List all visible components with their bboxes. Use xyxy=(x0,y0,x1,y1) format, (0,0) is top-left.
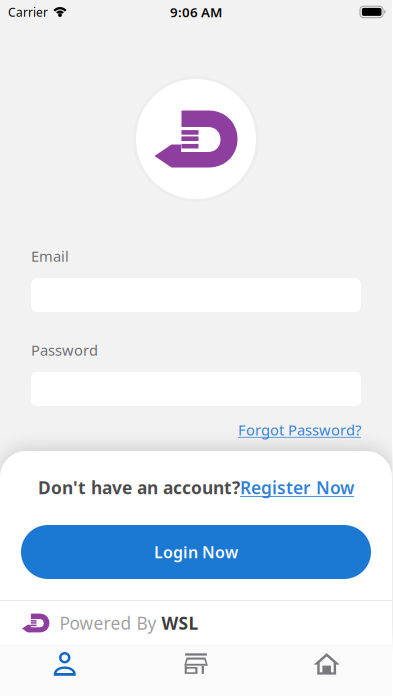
button[interactable]: Login Now xyxy=(21,525,371,579)
staticText: Email xyxy=(31,246,69,266)
button[interactable]: Home xyxy=(261,644,392,696)
staticText: 9:06 AM xyxy=(170,3,222,21)
staticText: Carrier xyxy=(8,4,48,20)
staticText: Powered By xyxy=(59,611,161,634)
staticText: WSL xyxy=(161,611,198,634)
staticText: Login Now xyxy=(154,541,238,563)
staticText: Register Now xyxy=(240,476,354,499)
staticText: Forgot Password? xyxy=(238,420,361,439)
button[interactable]: Forgot Password? xyxy=(31,420,361,439)
button[interactable]: Register Now xyxy=(240,476,354,499)
button[interactable]: Store xyxy=(131,644,261,696)
button[interactable]: Profile xyxy=(0,644,131,696)
staticText: Don't have an account? xyxy=(38,476,240,499)
staticText: Password xyxy=(31,340,98,360)
